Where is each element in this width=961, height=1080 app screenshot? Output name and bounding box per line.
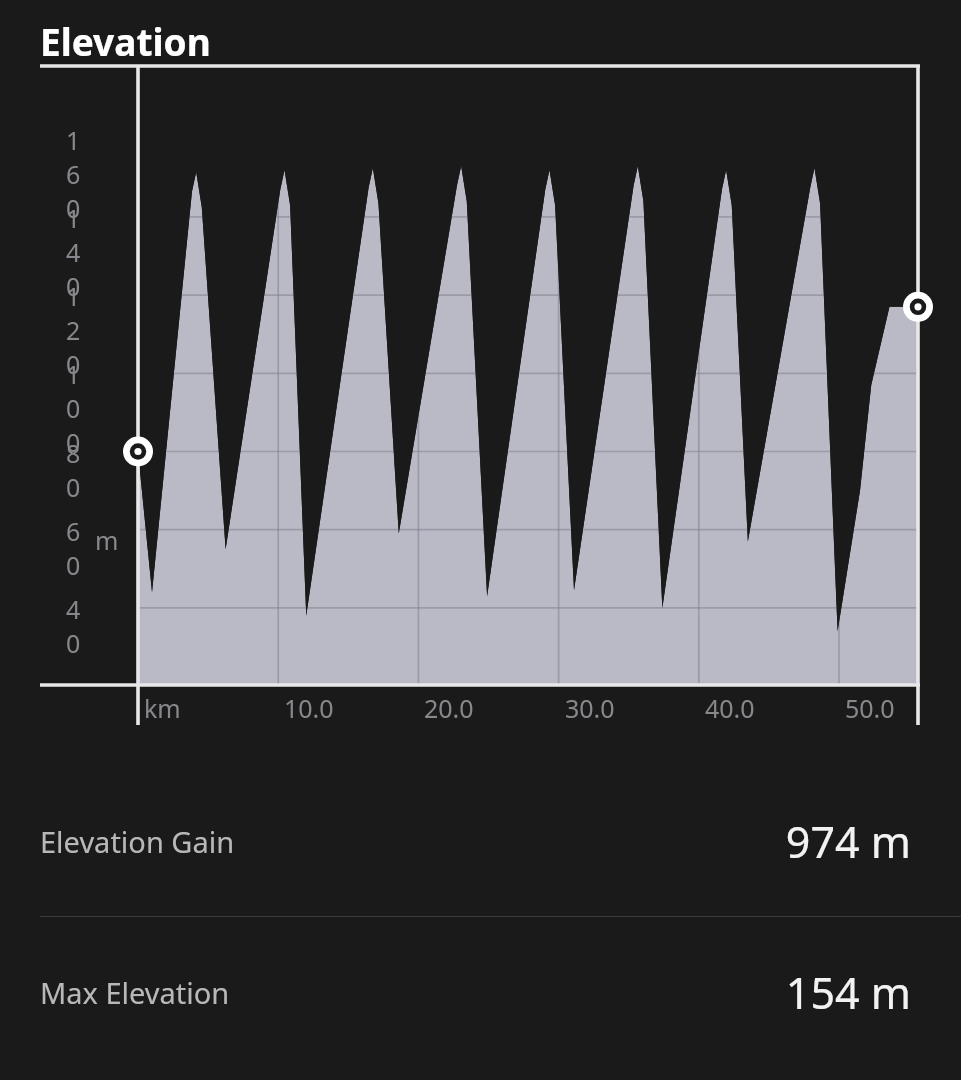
staticText: 30.0: [565, 691, 615, 725]
staticText: 154 m: [785, 963, 911, 1022]
staticText: Elevation Gain: [40, 822, 235, 861]
button[interactable]: Elevation profile chart: [0, 66, 961, 766]
staticText: 50.0: [845, 691, 895, 725]
staticText: m: [95, 523, 119, 557]
staticText: 974 m: [785, 812, 911, 871]
button[interactable]: Max Elevation: [0, 917, 961, 1067]
button[interactable]: Elevation Gain: [0, 766, 961, 916]
staticText: 10.0: [284, 691, 334, 725]
staticText: 20.0: [424, 691, 474, 725]
staticText: Max Elevation: [40, 973, 230, 1012]
staticText: km: [144, 691, 181, 725]
staticText: 40.0: [705, 691, 755, 725]
staticText: Elevation: [40, 16, 211, 66]
